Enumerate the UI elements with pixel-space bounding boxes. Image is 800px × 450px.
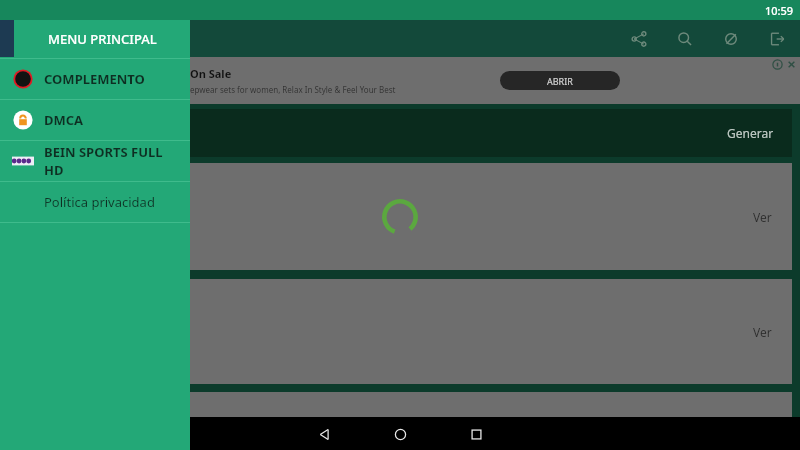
staticText: DMCA <box>44 111 84 129</box>
staticText: Ver <box>753 209 772 225</box>
button[interactable]: nto <box>8 163 792 270</box>
staticText: 10:59 <box>765 3 794 18</box>
button[interactable]: Home <box>385 419 415 449</box>
button[interactable]: COMPLEMENTO <box>0 59 190 99</box>
staticText: BEIN SPORTS FULL HD <box>44 143 184 179</box>
button[interactable]: Share <box>626 26 652 52</box>
button[interactable]: Back <box>309 419 339 449</box>
button[interactable]: BEIN SPORTS FULL HD <box>0 141 190 181</box>
staticText: ABRIR <box>547 75 573 87</box>
button[interactable]: DMCA <box>0 100 190 140</box>
staticText: nto <box>14 208 35 226</box>
staticText: Política privacidad <box>44 193 155 211</box>
button[interactable]: Recents <box>461 419 491 449</box>
button[interactable]: Generar <box>8 109 792 157</box>
staticText: On Sale <box>190 66 232 81</box>
staticText: epwear sets for women, Relax In Style & … <box>190 84 396 95</box>
button[interactable]: Ver <box>8 279 792 384</box>
button[interactable]: Exit <box>764 26 790 52</box>
button[interactable]: Notifications off <box>718 26 744 52</box>
staticText: MENU PRINCIPAL <box>48 30 157 48</box>
staticText: Ver <box>753 324 772 340</box>
staticText: Generar <box>727 125 774 141</box>
button[interactable] <box>8 392 792 417</box>
button[interactable]: ABRIR <box>500 71 620 90</box>
button[interactable]: Search <box>672 26 698 52</box>
button[interactable]: Close ad <box>786 59 798 71</box>
staticText: COMPLEMENTO <box>44 70 145 88</box>
button[interactable]: Política privacidad <box>0 182 190 222</box>
button[interactable]: Ad info <box>772 59 784 71</box>
